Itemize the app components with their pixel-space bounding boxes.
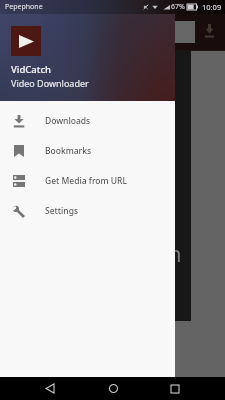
staticText: VidCatch: [11, 63, 52, 76]
button[interactable]: Recent apps: [162, 377, 188, 400]
staticText: Bookmarks: [45, 145, 92, 157]
staticText: n: [168, 238, 182, 268]
staticText: Pepephone: [5, 2, 43, 12]
button[interactable]: Bookmarks: [0, 136, 175, 166]
staticText: Settings: [45, 205, 79, 217]
staticText: 67%: [171, 2, 185, 12]
staticText: 10:09: [202, 2, 222, 12]
button[interactable]: Home: [100, 377, 126, 400]
staticText: Video Downloader: [11, 77, 89, 89]
button[interactable]: Get Media from URL: [0, 166, 175, 196]
button[interactable]: Back: [37, 377, 63, 400]
staticText: Get Media from URL: [45, 175, 127, 187]
staticText: Downloads: [45, 115, 91, 127]
button[interactable]: Downloads: [0, 106, 175, 136]
button[interactable]: Settings: [0, 196, 175, 226]
